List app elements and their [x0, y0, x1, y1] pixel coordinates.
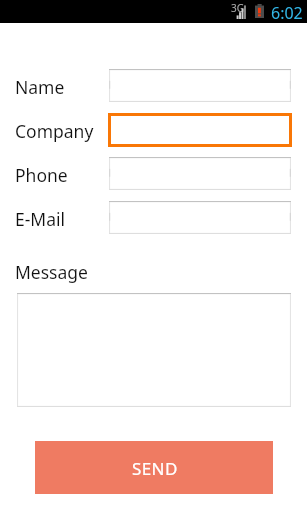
- staticText: 3G: [231, 1, 244, 15]
- button[interactable]: Name: [0, 69, 108, 103]
- button[interactable]: SEND: [35, 441, 273, 494]
- staticText: 6:02: [271, 2, 303, 24]
- other: Mobile signal 3G: [236, 4, 247, 19]
- button[interactable]: [108, 113, 292, 147]
- staticText: SEND: [132, 457, 178, 480]
- staticText: Message: [15, 260, 88, 284]
- staticText: E-Mail: [15, 207, 66, 231]
- button[interactable]: Phone: [0, 157, 108, 191]
- staticText: Phone: [15, 163, 68, 187]
- button[interactable]: Company: [0, 113, 108, 147]
- other: Battery low: [255, 4, 264, 18]
- button[interactable]: [17, 293, 291, 407]
- staticText: Name: [15, 75, 65, 99]
- staticText: Company: [15, 119, 94, 143]
- button[interactable]: [109, 69, 291, 102]
- button[interactable]: E-Mail: [0, 201, 108, 235]
- button[interactable]: [109, 157, 291, 190]
- button[interactable]: [109, 201, 291, 234]
- button[interactable]: Message: [0, 256, 120, 288]
